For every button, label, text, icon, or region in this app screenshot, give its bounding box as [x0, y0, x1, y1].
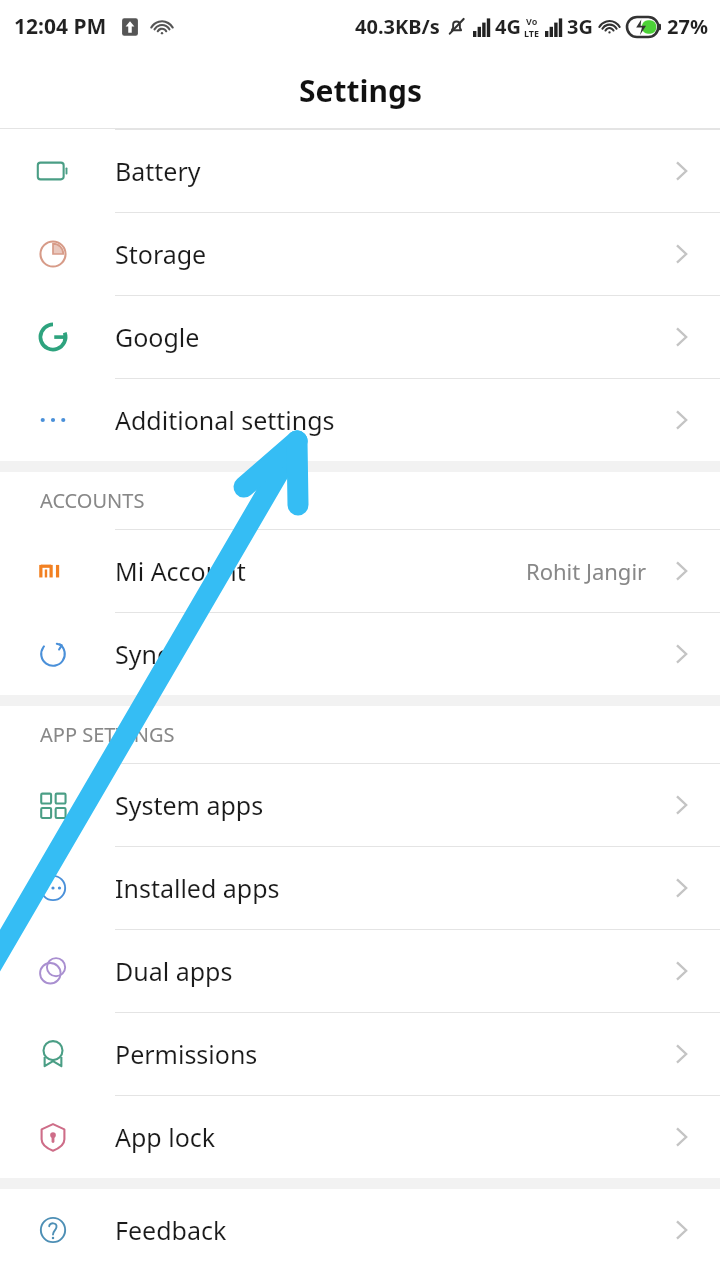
button[interactable]: Additional settings	[0, 378, 720, 461]
button[interactable]: Dual apps	[0, 929, 720, 1012]
other: Annotation arrow	[0, 0, 720, 1280]
staticText: 12:04 PM	[14, 12, 107, 41]
staticText: APP SETTINGS	[40, 721, 175, 748]
button[interactable]: Storage	[0, 212, 720, 295]
staticText: Rohit Jangir	[526, 556, 647, 586]
button[interactable]: App lock	[0, 1095, 720, 1178]
button[interactable]: Installed apps	[0, 846, 720, 929]
staticText: 27%	[667, 13, 708, 40]
staticText: Google	[115, 320, 200, 354]
staticText: Dual apps	[115, 954, 233, 988]
button[interactable]: Google	[0, 295, 720, 378]
staticText: Vo	[526, 15, 538, 27]
staticText: 4G	[495, 13, 521, 40]
staticText: Installed apps	[115, 871, 280, 905]
staticText: Feedback	[115, 1213, 227, 1247]
staticText: ACCOUNTS	[40, 487, 145, 514]
staticText: System apps	[115, 788, 264, 822]
staticText: Battery	[115, 154, 201, 188]
button[interactable]: Mi Account	[0, 529, 720, 612]
staticText: 40.3KB/s	[355, 13, 440, 40]
button[interactable]: Permissions	[0, 1012, 720, 1095]
staticText: Additional settings	[115, 403, 335, 437]
staticText: Permissions	[115, 1037, 258, 1071]
staticText: Sync	[115, 637, 169, 671]
staticText: 3G	[567, 13, 593, 40]
button[interactable]: System apps	[0, 763, 720, 846]
staticText: Storage	[115, 237, 207, 271]
staticText: App lock	[115, 1120, 216, 1154]
staticText: LTE	[524, 27, 540, 39]
staticText: Mi Account	[115, 554, 246, 588]
button[interactable]: Feedback	[0, 1189, 720, 1271]
button[interactable]: Battery	[0, 129, 720, 212]
staticText: Settings	[299, 70, 422, 111]
button[interactable]: Sync	[0, 612, 720, 695]
